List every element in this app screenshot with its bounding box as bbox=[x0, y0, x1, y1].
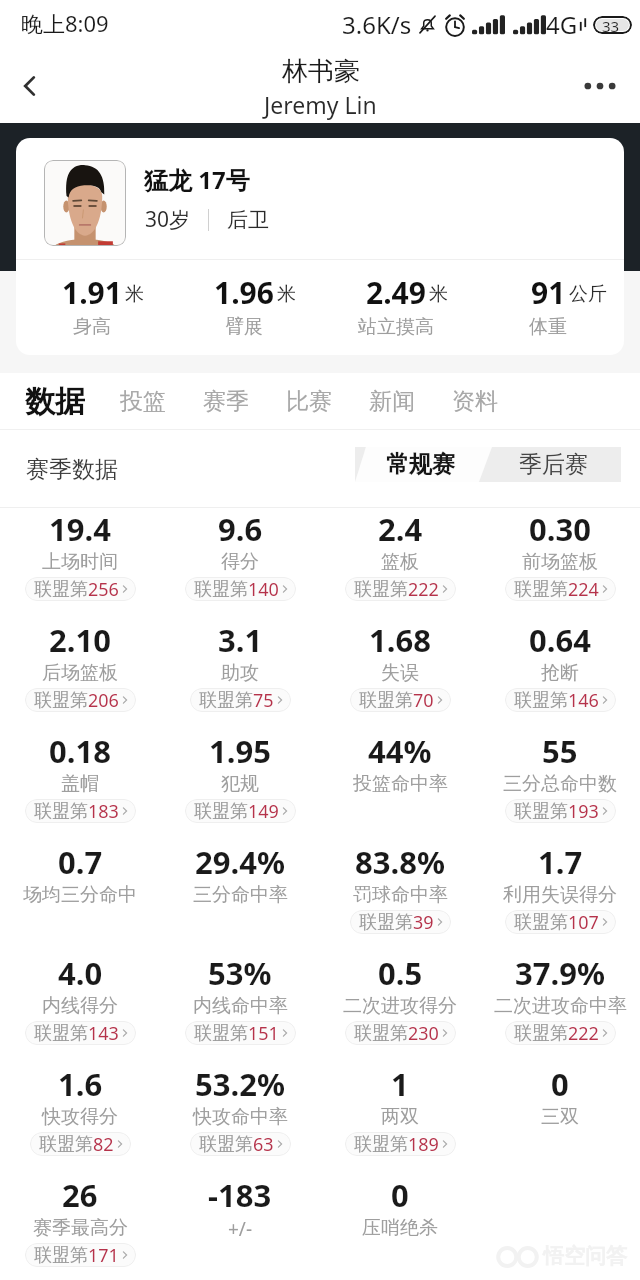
staticText: 后卫 bbox=[227, 207, 269, 233]
button[interactable]: 1.68 bbox=[320, 619, 480, 730]
staticText: 1.7 bbox=[538, 841, 583, 883]
button[interactable]: 2.4 bbox=[320, 508, 480, 619]
staticText: 联盟第 bbox=[34, 1022, 88, 1045]
staticText: 53.2% bbox=[195, 1063, 285, 1105]
staticText: 二次进攻命中率 bbox=[494, 994, 627, 1018]
button[interactable]: 资料 bbox=[452, 377, 498, 426]
staticText: -183 bbox=[208, 1174, 272, 1216]
button[interactable]: 比赛 bbox=[286, 377, 332, 426]
staticText: 联盟第 bbox=[34, 689, 88, 712]
button[interactable]: 1.95 bbox=[160, 730, 320, 841]
button[interactable]: 2.10 bbox=[0, 619, 160, 730]
button[interactable]: 0 bbox=[480, 1063, 640, 1174]
staticText: 得分 bbox=[221, 550, 259, 574]
staticText: 联盟第 bbox=[34, 578, 88, 601]
button[interactable]: 0.7 bbox=[0, 841, 160, 952]
staticText: 快攻命中率 bbox=[193, 1105, 288, 1129]
staticText: 联盟第 bbox=[354, 1133, 408, 1156]
staticText: 后场篮板 bbox=[42, 661, 118, 685]
staticText: 1.91 bbox=[62, 272, 122, 313]
staticText: 171 bbox=[88, 1243, 119, 1267]
staticText: 26 bbox=[62, 1174, 98, 1216]
staticText: 前场篮板 bbox=[522, 550, 598, 574]
button[interactable]: 26 bbox=[0, 1174, 160, 1280]
staticText: 0 bbox=[391, 1174, 409, 1216]
button[interactable]: 新闻 bbox=[369, 377, 415, 426]
staticText: 222 bbox=[408, 577, 439, 601]
button[interactable]: 0.64 bbox=[480, 619, 640, 730]
button[interactable]: 投篮 bbox=[120, 377, 166, 426]
button[interactable]: 1.6 bbox=[0, 1063, 160, 1174]
staticText: 三分命中率 bbox=[193, 883, 288, 907]
staticText: 投篮命中率 bbox=[353, 772, 448, 796]
button[interactable]: 37.9% bbox=[480, 952, 640, 1063]
button[interactable]: 29.4% bbox=[160, 841, 320, 952]
button[interactable]: 9.6 bbox=[160, 508, 320, 619]
staticText: 资料 bbox=[452, 387, 498, 416]
staticText: 利用失误得分 bbox=[503, 883, 617, 907]
staticText: 联盟第 bbox=[514, 578, 568, 601]
staticText: 联盟第 bbox=[359, 911, 413, 934]
staticText: 季后赛 bbox=[519, 450, 588, 479]
staticText: 146 bbox=[568, 688, 599, 712]
staticText: 联盟第 bbox=[34, 800, 88, 823]
staticText: 63 bbox=[253, 1132, 274, 1156]
button[interactable]: 0.30 bbox=[480, 508, 640, 619]
staticText: 0.64 bbox=[529, 619, 591, 661]
staticText: 新闻 bbox=[369, 387, 415, 416]
staticText: 常规赛 bbox=[386, 450, 455, 479]
staticText: 53% bbox=[208, 952, 272, 994]
button[interactable]: 55 bbox=[480, 730, 640, 841]
button[interactable]: 数据 bbox=[25, 373, 85, 430]
staticText: 149 bbox=[248, 799, 279, 823]
staticText: 9.6 bbox=[218, 508, 263, 550]
staticText: 快攻得分 bbox=[42, 1105, 118, 1129]
staticText: 赛季数据 bbox=[26, 455, 118, 484]
button[interactable]: 1 bbox=[320, 1063, 480, 1174]
button[interactable]: 0.18 bbox=[0, 730, 160, 841]
button[interactable]: Back bbox=[6, 62, 54, 110]
button[interactable]: -183 bbox=[160, 1174, 320, 1280]
button[interactable]: 1.7 bbox=[480, 841, 640, 952]
staticText: 19.4 bbox=[49, 508, 111, 550]
staticText: 70 bbox=[413, 688, 434, 712]
staticText: 米 bbox=[429, 282, 448, 306]
button[interactable]: 44% bbox=[320, 730, 480, 841]
staticText: 联盟第 bbox=[359, 689, 413, 712]
staticText: 猛龙 17号 bbox=[144, 163, 250, 196]
button[interactable]: 4.0 bbox=[0, 952, 160, 1063]
staticText: 83.8% bbox=[355, 841, 445, 883]
staticText: 罚球命中率 bbox=[353, 883, 448, 907]
staticText: 站立摸高 bbox=[358, 315, 434, 339]
staticText: 赛季最高分 bbox=[33, 1216, 128, 1240]
staticText: 143 bbox=[88, 1021, 119, 1045]
button[interactable]: 83.8% bbox=[320, 841, 480, 952]
button[interactable]: 0.5 bbox=[320, 952, 480, 1063]
staticText: 场均三分命中 bbox=[23, 883, 137, 907]
button[interactable]: More options bbox=[576, 62, 624, 110]
button[interactable]: 赛季 bbox=[203, 377, 249, 426]
staticText: 联盟第 bbox=[354, 1022, 408, 1045]
staticText: 联盟第 bbox=[194, 800, 248, 823]
staticText: 3.1 bbox=[218, 619, 263, 661]
staticText: 联盟第 bbox=[514, 689, 568, 712]
button[interactable]: 0 bbox=[320, 1174, 480, 1280]
staticText: 224 bbox=[568, 577, 599, 601]
button[interactable]: 53% bbox=[160, 952, 320, 1063]
button[interactable]: 季后赛 bbox=[485, 447, 621, 482]
staticText: 230 bbox=[408, 1021, 439, 1045]
staticText: 0.30 bbox=[529, 508, 591, 550]
staticText: 盖帽 bbox=[61, 772, 99, 796]
staticText: +/- bbox=[228, 1216, 253, 1242]
staticText: 晚上8:09 bbox=[21, 8, 109, 38]
button[interactable]: 3.1 bbox=[160, 619, 320, 730]
button[interactable]: 19.4 bbox=[0, 508, 160, 619]
staticText: 联盟第 bbox=[194, 578, 248, 601]
staticText: 身高 bbox=[73, 315, 111, 339]
staticText: 臂展 bbox=[225, 315, 263, 339]
staticText: 256 bbox=[88, 577, 119, 601]
staticText: 篮板 bbox=[381, 550, 419, 574]
button[interactable]: 53.2% bbox=[160, 1063, 320, 1174]
button[interactable]: 常规赛 bbox=[355, 447, 485, 482]
staticText: 0.18 bbox=[49, 730, 111, 772]
